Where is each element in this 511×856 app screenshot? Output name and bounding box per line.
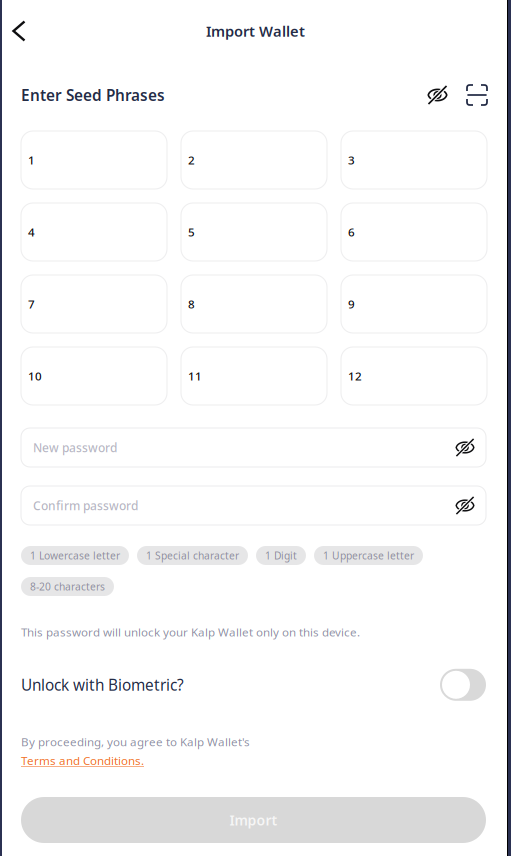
- button[interactable]: Unlock with Biometric: [440, 669, 486, 701]
- button[interactable]: 5: [181, 203, 327, 261]
- staticText: 11: [188, 368, 202, 384]
- staticText: 9: [348, 296, 355, 312]
- staticText: 1 Lowercase letter: [30, 548, 120, 562]
- staticText: 3: [348, 152, 355, 168]
- staticText: 1 Digit: [265, 548, 297, 562]
- button[interactable]: 2: [181, 131, 327, 189]
- staticText: Unlock with Biometric?: [21, 674, 184, 695]
- button[interactable]: 8: [181, 275, 327, 333]
- button[interactable]: 6: [341, 203, 487, 261]
- button[interactable]: Back: [1, 11, 37, 51]
- button[interactable]: 7: [21, 275, 167, 333]
- button[interactable]: 10: [21, 347, 167, 405]
- staticText: 1: [28, 152, 35, 168]
- staticText: 10: [28, 368, 42, 384]
- button[interactable]: Show password: [448, 428, 482, 466]
- staticText: Enter Seed Phrases: [21, 85, 165, 105]
- button[interactable]: 9: [341, 275, 487, 333]
- staticText: 8-20 characters: [30, 579, 105, 593]
- button[interactable]: 12: [341, 347, 487, 405]
- staticText: Confirm password: [33, 497, 138, 514]
- button[interactable]: 11: [181, 347, 327, 405]
- staticText: This password will unlock your Kalp Wall…: [21, 624, 360, 640]
- staticText: Import Wallet: [206, 21, 305, 41]
- staticText: 8: [188, 296, 195, 312]
- staticText: New password: [33, 439, 117, 456]
- button[interactable]: Hide seed phrases: [427, 81, 448, 109]
- button[interactable]: 1: [21, 131, 167, 189]
- button[interactable]: Terms and Conditions.: [21, 753, 144, 768]
- staticText: 12: [348, 368, 362, 384]
- staticText: 1 Uppercase letter: [323, 548, 414, 562]
- button[interactable]: Import: [21, 797, 486, 843]
- button[interactable]: Scan QR code: [467, 81, 487, 109]
- staticText: 2: [188, 152, 195, 168]
- staticText: 5: [188, 224, 195, 240]
- button[interactable]: 3: [341, 131, 487, 189]
- staticText: Import: [229, 810, 277, 830]
- staticText: 7: [28, 296, 35, 312]
- staticText: Terms and Conditions.: [21, 753, 144, 768]
- staticText: By proceeding, you agree to Kalp Wallet'…: [21, 734, 250, 750]
- staticText: 1 Special character: [146, 548, 239, 562]
- staticText: 4: [28, 224, 35, 240]
- staticText: 6: [348, 224, 355, 240]
- button[interactable]: 4: [21, 203, 167, 261]
- button[interactable]: Show password: [448, 486, 482, 524]
